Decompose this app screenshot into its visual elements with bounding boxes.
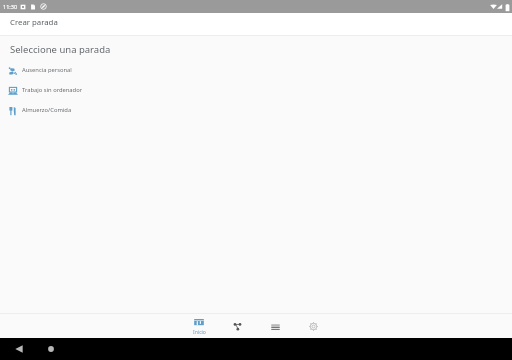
staticText: 11:30: [3, 3, 18, 10]
button[interactable]: Ausencia personal: [0, 61, 512, 81]
staticText: Crear parada: [10, 17, 58, 28]
staticText: Inicio: [193, 329, 206, 336]
button[interactable]: Inicio: [180, 314, 218, 338]
button[interactable]: Lista: [256, 314, 294, 338]
staticText: Seleccione una parada: [10, 43, 111, 56]
button[interactable]: Trabajo sin ordenador: [0, 81, 512, 101]
staticText: Trabajo sin ordenador: [22, 86, 83, 94]
button[interactable]: Compartir: [218, 314, 256, 338]
button[interactable]: Ajustes: [294, 314, 332, 338]
button[interactable]: Home: [44, 343, 56, 355]
button[interactable]: Back: [12, 342, 26, 356]
staticText: Ausencia personal: [22, 66, 72, 74]
staticText: Almuerzo/Comida: [22, 106, 72, 114]
button[interactable]: Almuerzo/Comida: [0, 101, 512, 121]
